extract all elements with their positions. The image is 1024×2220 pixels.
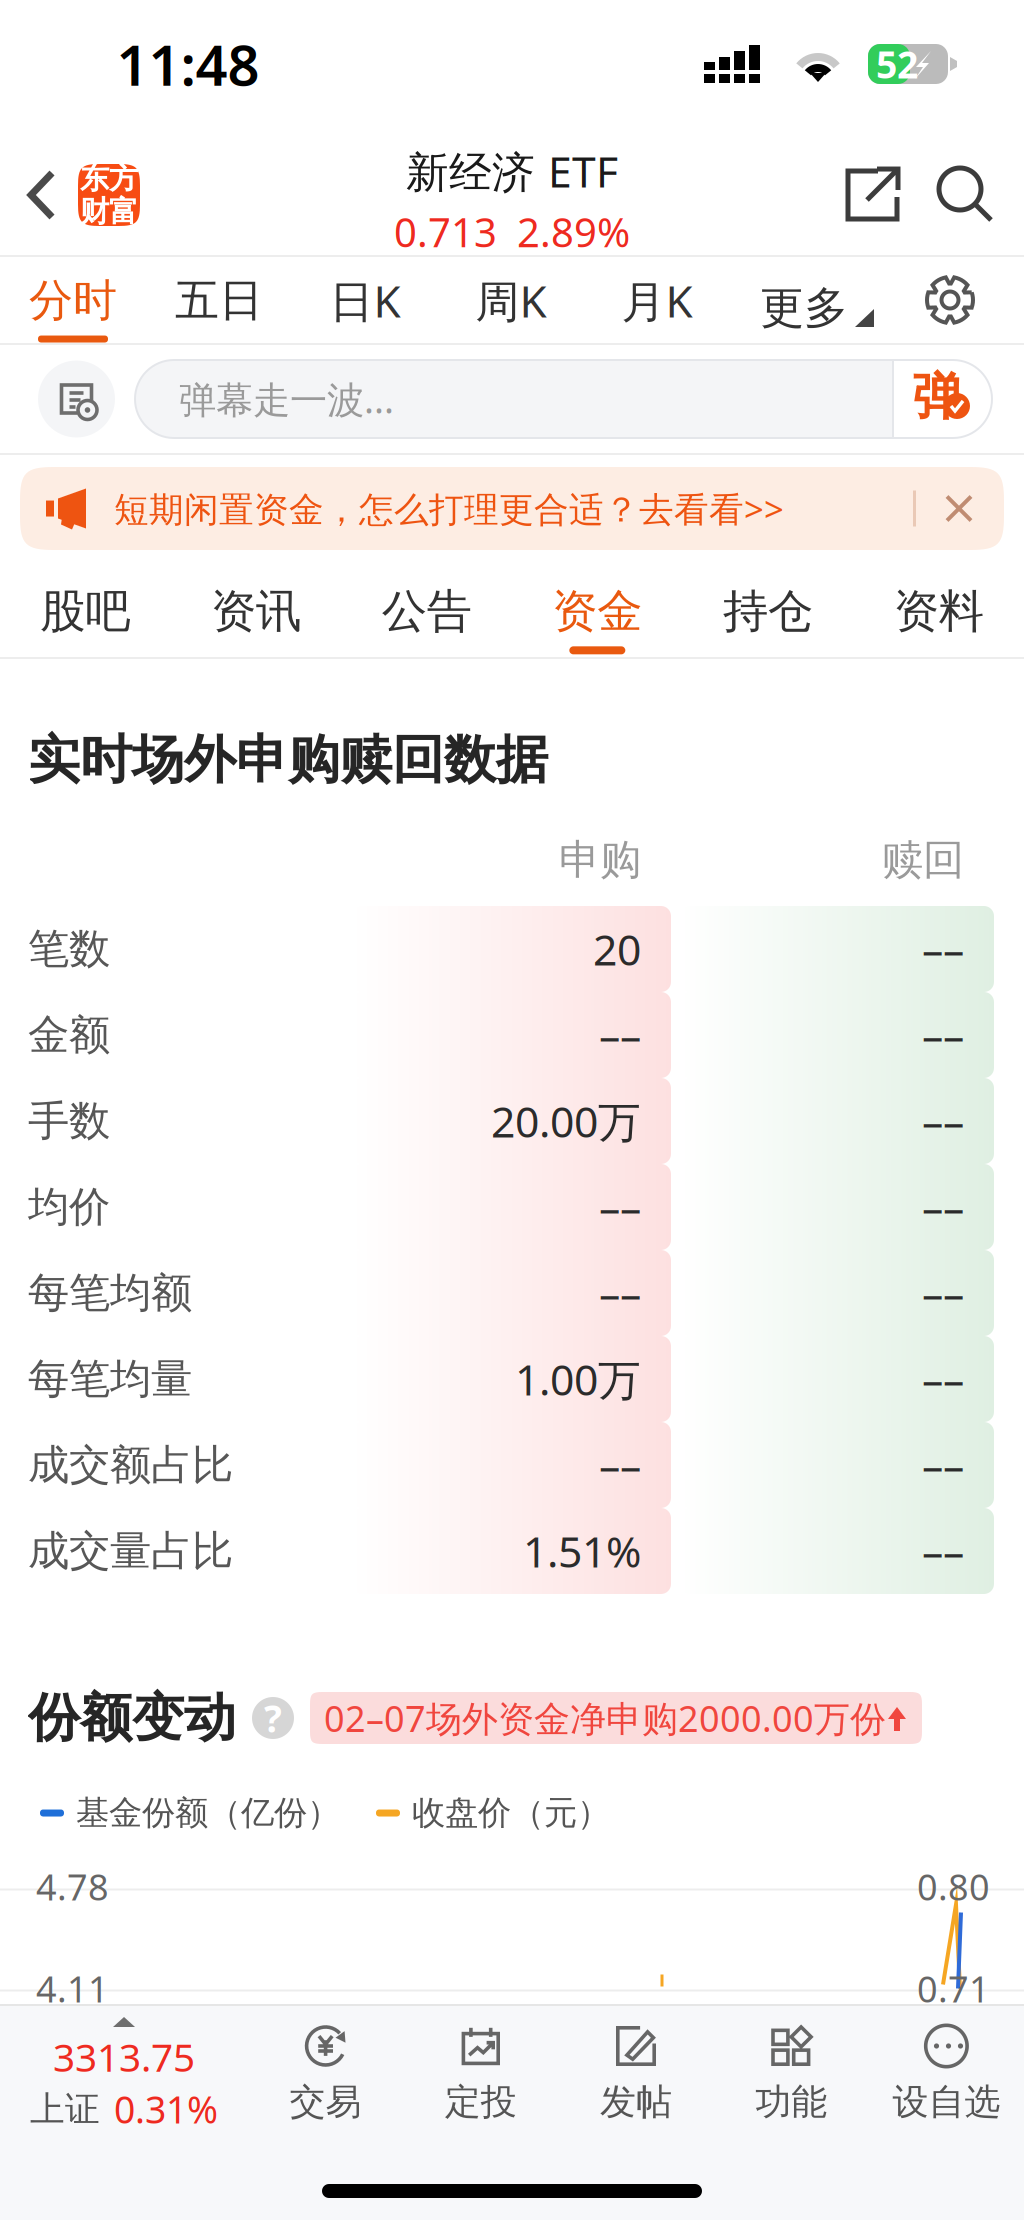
staticText: 成交量占比 [28,1526,233,1576]
staticText: 持仓 [723,584,813,639]
staticText: 东方 [80,160,138,196]
button[interactable]: 设置 [924,257,1024,343]
staticText: –– [599,1265,641,1321]
staticText: 赎回 [882,835,964,885]
staticText: 公告 [382,584,472,639]
button[interactable]: 说明 [236,1697,310,1739]
staticText: 02–07场外资金净申购2000.00万份 [324,1694,886,1742]
staticText: –– [922,921,964,977]
staticText: 0.80 [917,1863,990,1910]
button[interactable]: 东方财富 [78,164,140,226]
staticText: 资料 [894,584,984,639]
staticText: 上证 [30,2088,100,2130]
staticText: –– [922,1265,964,1321]
staticText: 弹 [912,366,963,428]
staticText: 周K [475,271,546,330]
staticText: 每笔均量 [28,1354,192,1404]
staticText: 4.78 [36,1863,109,1910]
staticText: –– [599,1437,641,1493]
button[interactable]: 资料 [853,562,1024,657]
staticText: 申购 [559,835,641,885]
staticText: 日K [329,271,400,330]
button[interactable]: 分时 [0,257,146,343]
staticText: 0.713 2.89% [394,205,630,258]
staticText: 五日 [175,273,263,327]
button[interactable]: 弹幕设置 [0,360,135,437]
button[interactable]: 公告 [341,562,512,657]
staticText: 笔数 [28,924,110,974]
button[interactable]: 资金 [512,562,683,657]
staticText: 新经济 ETF [406,143,618,199]
staticText: 金额 [28,1010,110,1060]
staticText: 20 [593,921,641,977]
staticText: 份额变动 [28,1686,236,1750]
staticText: 收盘价（元） [412,1792,610,1833]
staticText: –– [922,1437,964,1493]
staticText: –– [922,1523,964,1579]
staticText: 基金份额（亿份） [76,1792,340,1833]
staticText: 0.71 [917,1965,990,2012]
button[interactable]: 发帖 [558,2006,714,2146]
button[interactable]: 持仓 [683,562,853,657]
staticText: 月K [621,271,692,330]
staticText: 财富 [80,193,138,229]
button[interactable]: 定投 [403,2006,558,2146]
staticText: –– [599,1179,641,1235]
staticText: 52 [876,39,918,89]
staticText: 发帖 [600,2080,672,2124]
staticText: ? [264,1693,282,1743]
button[interactable]: 股吧 [0,562,171,657]
button[interactable]: 短期闲置资金，怎么打理更合适？去看看>> [0,455,1024,562]
staticText: 弹幕走一波... [179,374,394,424]
button[interactable]: 交易 [248,2006,403,2146]
staticText: 每笔均额 [28,1268,192,1318]
button[interactable]: 五日 [146,257,292,343]
button[interactable]: 功能 [714,2006,869,2146]
staticText: –– [599,1007,641,1063]
staticText: 功能 [755,2080,827,2124]
button[interactable]: 日K [292,257,438,343]
button[interactable]: 搜索 [928,135,1024,255]
staticText: 均价 [28,1182,110,1232]
staticText: –– [922,1093,964,1149]
staticText: –– [922,1179,964,1235]
button[interactable]: 设自选 [869,2006,1024,2146]
button[interactable]: 更多 [730,257,906,343]
button[interactable]: 资讯 [171,562,341,657]
staticText: –– [922,1007,964,1063]
staticText: 交易 [290,2080,362,2124]
button[interactable]: 月K [584,257,730,343]
staticText: 资金 [552,584,642,639]
staticText: 20.00万 [491,1093,641,1149]
staticText: 1.00万 [515,1351,641,1407]
staticText: 短期闲置资金，怎么打理更合适？去看看>> [114,485,784,531]
button[interactable]: 返回 [0,135,78,255]
button[interactable]: 发弹幕 [135,360,1024,438]
staticText: 手数 [28,1096,110,1146]
staticText: 实时场外申购赎回数据 [28,728,548,792]
staticText: 11:48 [116,27,259,101]
staticText: 1.51% [523,1523,641,1579]
staticText: 4.11 [36,1965,109,2012]
staticText: 设自选 [892,2080,1000,2124]
staticText: 分时 [29,273,117,327]
button[interactable]: 3313.75 [0,2006,248,2146]
staticText: 股吧 [40,584,130,639]
staticText: 0.31% [114,2084,218,2134]
button[interactable]: 分享 [818,135,928,255]
staticText: 定投 [445,2080,517,2124]
staticText: 资讯 [211,584,301,639]
button[interactable]: 周K [438,257,584,343]
staticText: 成交额占比 [28,1440,233,1490]
staticText: 更多 [760,281,848,335]
staticText: 3313.75 [53,2031,195,2082]
staticText: –– [922,1351,964,1407]
